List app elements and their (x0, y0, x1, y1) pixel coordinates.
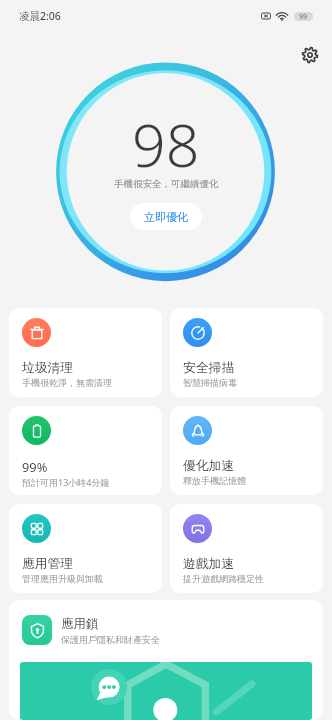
staticText: 管理應用升級與卸載 (22, 573, 103, 584)
button[interactable]: 應用管理 (9, 504, 162, 593)
staticText: 智慧掃描病毒 (183, 377, 237, 388)
staticText: 立即優化 (144, 210, 188, 224)
staticText: 手機很安全，可繼續優化 (114, 178, 219, 190)
staticText: 預計可用13小時4分鐘 (22, 476, 110, 488)
staticText: 釋放手機記憶體 (183, 475, 246, 486)
button[interactable]: Promo banner (20, 662, 312, 720)
staticText: 手機很乾淨，無需清理 (22, 377, 112, 388)
button[interactable]: Settings (297, 42, 322, 67)
button[interactable]: 立即優化 (130, 203, 202, 230)
staticText: 安全掃描 (183, 360, 235, 376)
staticText: 應用管理 (22, 556, 74, 572)
staticText: 垃圾清理 (22, 360, 74, 376)
button[interactable]: 遊戲加速 (170, 504, 323, 593)
staticText: 98 (132, 104, 200, 184)
button[interactable]: 99% (9, 406, 162, 495)
staticText: 應用鎖 (61, 616, 99, 632)
staticText: 凌晨2:06 (19, 9, 61, 23)
staticText: 保護用戶隱私和財產安全 (61, 634, 160, 645)
staticText: 提升遊戲網路穩定性 (183, 573, 264, 584)
button[interactable]: 優化加速 (170, 406, 323, 495)
staticText: 優化加速 (183, 458, 235, 474)
button[interactable]: 應用鎖 (9, 600, 323, 660)
staticText: 99% (22, 458, 48, 475)
staticText: 99 (299, 12, 308, 21)
staticText: 遊戲加速 (183, 556, 235, 572)
button[interactable]: 垃圾清理 (9, 308, 162, 397)
button[interactable]: 安全掃描 (170, 308, 323, 397)
